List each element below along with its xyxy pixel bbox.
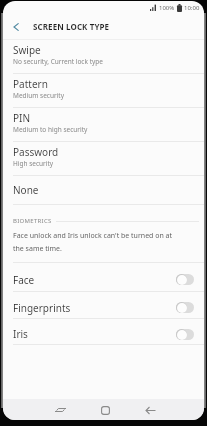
button[interactable]: None bbox=[3, 176, 204, 204]
staticText: Medium to high security bbox=[13, 125, 88, 134]
button[interactable]: Face bbox=[3, 263, 204, 291]
button[interactable]: PIN bbox=[3, 108, 204, 141]
staticText: SCREEN LOCK TYPE bbox=[33, 21, 110, 32]
staticText: Face unlock and Iris unlock can't be tur… bbox=[13, 231, 173, 241]
button[interactable] bbox=[140, 400, 160, 420]
staticText: Fingerprints bbox=[13, 301, 71, 315]
staticText: Medium security bbox=[13, 91, 64, 100]
staticText: Swipe bbox=[13, 43, 41, 57]
staticText: 100% bbox=[159, 4, 175, 12]
button[interactable] bbox=[95, 400, 115, 420]
staticText: the same time. bbox=[13, 244, 62, 254]
staticText: PIN bbox=[13, 111, 31, 125]
staticText: No security, Current lock type bbox=[13, 57, 103, 66]
staticText: 10:00 bbox=[184, 4, 200, 12]
button[interactable] bbox=[50, 400, 70, 420]
staticText: Iris bbox=[13, 327, 28, 341]
staticText: Pattern bbox=[13, 77, 48, 91]
button[interactable]: Iris bbox=[3, 319, 204, 344]
staticText: None bbox=[13, 183, 39, 197]
staticText: Password bbox=[13, 145, 59, 159]
staticText: High security bbox=[13, 159, 54, 168]
button[interactable]: Fingerprints bbox=[3, 292, 204, 318]
button[interactable]: Swipe bbox=[3, 40, 204, 73]
button[interactable]: Pattern bbox=[3, 74, 204, 107]
staticText: Face bbox=[13, 273, 35, 287]
button[interactable]: Password bbox=[3, 142, 204, 175]
button[interactable] bbox=[3, 14, 29, 39]
staticText: BIOMETRICS bbox=[13, 217, 52, 225]
